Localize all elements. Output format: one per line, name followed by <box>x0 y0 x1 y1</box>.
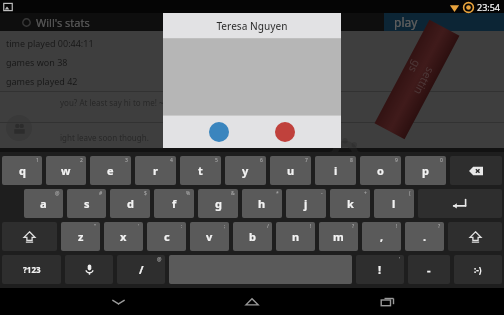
staticText: + <box>364 190 367 197</box>
button[interactable]: ! <box>276 222 315 251</box>
staticText: $ <box>144 190 147 197</box>
staticText: q <box>19 163 26 178</box>
staticText: t <box>198 163 203 178</box>
staticText: Will's stats <box>36 15 90 30</box>
staticText: ! <box>396 223 398 230</box>
staticText: 23:54 <box>477 1 501 13</box>
staticText: ?123 <box>23 264 41 275</box>
staticText: p <box>422 163 429 178</box>
button[interactable]: / <box>233 222 272 251</box>
button[interactable]: 1 <box>2 156 42 185</box>
button[interactable]: ' <box>104 222 143 251</box>
staticText: 2 <box>80 157 83 164</box>
staticText: 1 <box>36 157 39 164</box>
button[interactable]: ( <box>374 189 414 218</box>
button[interactable]: 5 <box>180 156 221 185</box>
staticText: you? At least say hi to me! ~at game roo… <box>60 97 217 108</box>
staticText: 7 <box>305 157 308 164</box>
staticText: 8 <box>350 157 353 164</box>
button[interactable]: Voice input <box>65 255 113 284</box>
staticText: " <box>94 223 97 230</box>
button[interactable]: 7 <box>270 156 311 185</box>
button[interactable]: Accept <box>209 122 229 142</box>
staticText: 5 <box>215 157 218 164</box>
button[interactable]: ? <box>319 222 358 251</box>
staticText: . <box>423 229 427 244</box>
button[interactable]: # <box>67 189 106 218</box>
staticText: n <box>292 229 300 244</box>
staticText: & <box>231 190 235 197</box>
button[interactable]: Decline <box>275 122 295 142</box>
button[interactable]: 4 <box>135 156 176 185</box>
button[interactable]: % <box>154 189 194 218</box>
staticText: - <box>427 262 431 277</box>
button[interactable]: @ <box>24 189 63 218</box>
staticText: b <box>249 229 256 244</box>
staticText: Teresa Nguyen <box>216 19 288 33</box>
button[interactable]: - <box>408 255 450 284</box>
staticText: ; <box>224 223 226 230</box>
staticText: ( <box>409 190 411 197</box>
staticText: y <box>242 163 249 178</box>
staticText: % <box>186 190 191 197</box>
staticText: v <box>206 229 213 244</box>
staticText: c <box>164 229 170 244</box>
staticText: l <box>392 196 396 211</box>
staticText: : <box>181 223 183 230</box>
staticText: * <box>276 190 279 197</box>
staticText: 9 <box>395 157 398 164</box>
button[interactable]: + <box>330 189 370 218</box>
button[interactable]: Enter <box>418 189 502 218</box>
staticText: :-) <box>474 264 482 275</box>
button[interactable]: 8 <box>315 156 356 185</box>
button[interactable]: Home <box>235 288 269 315</box>
button[interactable]: Delete <box>450 156 502 185</box>
button[interactable]: & <box>198 189 238 218</box>
staticText: f <box>172 196 177 211</box>
staticText: i <box>334 163 338 178</box>
button[interactable]: 0 <box>405 156 446 185</box>
button[interactable]: " <box>61 222 100 251</box>
button[interactable]: ; <box>190 222 229 251</box>
staticText: m <box>333 229 344 244</box>
button[interactable]: Recent apps <box>370 288 404 315</box>
button[interactable]: $ <box>110 189 150 218</box>
staticText: @ <box>55 190 60 197</box>
button[interactable]: ! <box>362 222 401 251</box>
button[interactable]: : <box>147 222 186 251</box>
staticText: - <box>321 190 323 197</box>
staticText: ? <box>352 223 355 230</box>
staticText: / <box>139 262 144 277</box>
button[interactable]: * <box>242 189 282 218</box>
staticText: / <box>267 223 269 230</box>
button[interactable]: :-) <box>454 255 502 284</box>
button[interactable]: Shift <box>448 222 502 251</box>
button[interactable]: Back <box>101 288 135 315</box>
button[interactable]: Shift <box>2 222 57 251</box>
staticText: ! <box>310 223 312 230</box>
staticText: time played 00:44:11 <box>6 37 94 49</box>
button[interactable]: 2 <box>46 156 86 185</box>
staticText: 0 <box>440 157 443 164</box>
staticText: games won 38 <box>6 56 68 68</box>
button[interactable]: @ <box>117 255 165 284</box>
button[interactable]: - <box>286 189 326 218</box>
button[interactable]: ' <box>356 255 404 284</box>
staticText: 3 <box>125 157 128 164</box>
staticText: 6 <box>260 157 263 164</box>
button[interactable]: ? <box>405 222 444 251</box>
staticText: w <box>61 163 71 178</box>
staticText: e <box>107 163 114 178</box>
staticText: s <box>84 196 90 211</box>
button[interactable]: 6 <box>225 156 266 185</box>
staticText: ' <box>138 223 140 230</box>
staticText: j <box>304 196 308 211</box>
button[interactable]: 9 <box>360 156 401 185</box>
staticText: z <box>78 229 84 244</box>
button[interactable]: ?123 <box>2 255 61 284</box>
staticText: settings <box>395 58 438 102</box>
staticText: @ <box>157 256 162 263</box>
staticText: a <box>40 196 47 211</box>
button[interactable]: 3 <box>90 156 131 185</box>
